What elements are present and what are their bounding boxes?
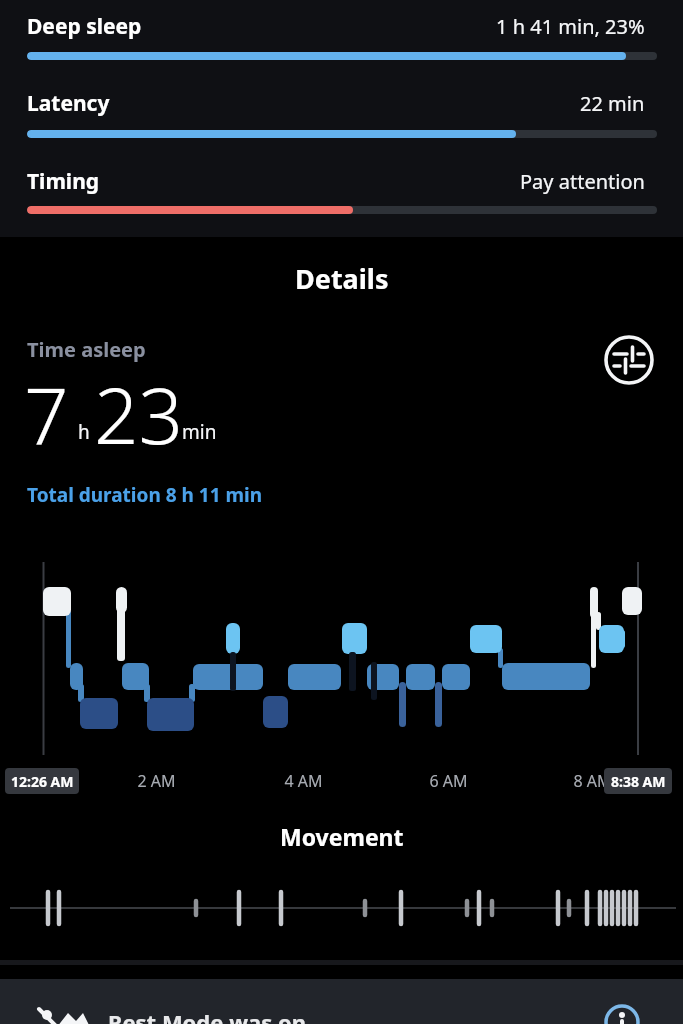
staticText: 23 [94,361,184,467]
staticText: h [78,419,90,445]
staticText: Time asleep [27,336,146,363]
staticText: Latency [27,89,110,118]
button[interactable]: Timing [27,163,645,199]
staticText: Pay attention [520,168,645,195]
button[interactable]: Deep sleep [27,8,645,44]
staticText: 7 [24,361,69,467]
staticText: Rest Mode was on [108,1007,306,1024]
staticText: 6 AM [429,770,468,792]
staticText: Timing [27,167,100,196]
staticText: 1 h 41 min, 23% [496,13,645,40]
button[interactable]: Latency [27,85,645,121]
staticText: 12:26 AM [11,772,74,791]
staticText: Movement [280,821,404,852]
staticText: Deep sleep [27,12,142,41]
button[interactable] [603,334,655,386]
staticText: Details [295,260,389,297]
button[interactable] [603,1004,641,1024]
button[interactable]: Rest Mode was on [0,979,683,1024]
staticText: 8 AM [573,770,612,792]
staticText: 8:38 AM [611,772,666,791]
staticText: 2 AM [137,770,176,792]
staticText: 4 AM [284,770,323,792]
staticText: min [182,419,217,445]
staticText: 22 min [580,90,645,117]
button[interactable]: Total duration 8 h 11 min [0,0,236,26]
